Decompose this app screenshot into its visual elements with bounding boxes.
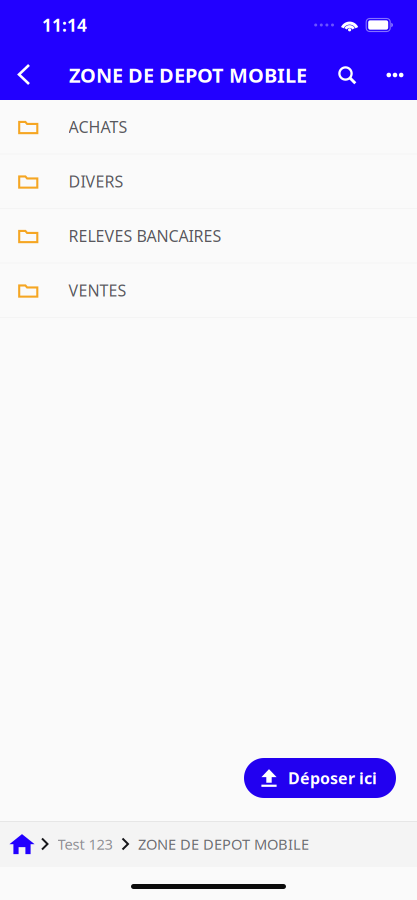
button[interactable]: ACHATS: [0, 100, 417, 154]
staticText: VENTES: [68, 280, 126, 301]
staticText: ZONE DE DEPOT MOBILE: [69, 62, 307, 88]
staticText: DIVERS: [68, 171, 123, 192]
button[interactable]: Test 123: [57, 834, 112, 854]
button[interactable]: RELEVES BANCAIRES: [0, 209, 417, 263]
button[interactable]: Déposer ici: [244, 758, 396, 798]
button[interactable]: More options: [378, 50, 412, 100]
button[interactable]: Search: [328, 50, 366, 100]
staticText: ACHATS: [68, 116, 127, 137]
button[interactable]: Back: [1, 50, 47, 100]
button[interactable]: DIVERS: [0, 154, 417, 209]
button[interactable]: VENTES: [0, 263, 417, 318]
staticText: ZONE DE DEPOT MOBILE: [138, 834, 309, 854]
staticText: Déposer ici: [288, 767, 377, 789]
staticText: Test 123: [57, 834, 112, 854]
staticText: RELEVES BANCAIRES: [68, 225, 221, 246]
button[interactable]: Home: [9, 833, 35, 854]
staticText: 11:14: [42, 13, 87, 36]
